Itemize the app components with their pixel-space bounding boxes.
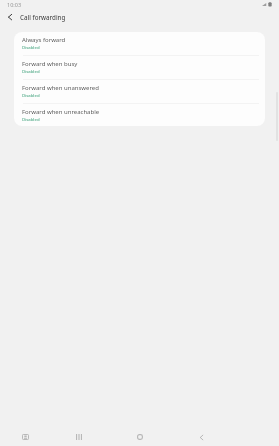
staticText: Disabled [22,92,40,98]
staticText: Disabled [22,44,40,50]
button[interactable]: Forward when unanswered [14,80,265,104]
button[interactable]: Back [191,428,211,446]
button[interactable]: Recent apps [69,428,89,446]
button[interactable]: Forward when unreachable [14,104,265,126]
staticText: Disabled [22,116,40,122]
button[interactable]: Home [130,428,150,446]
staticText: Call forwarding [20,13,66,21]
staticText: Forward when busy [22,60,78,68]
button[interactable]: Always forward [14,32,265,56]
button[interactable]: Navigate up [0,7,20,26]
staticText: Forward when unreachable [22,108,100,116]
staticText: Always forward [22,36,66,44]
staticText: 10:03 [7,1,22,8]
staticText: Forward when unanswered [22,84,99,92]
staticText: Disabled [22,68,40,74]
button[interactable]: Forward when busy [14,56,265,80]
button[interactable]: Hide keyboard [15,428,35,446]
